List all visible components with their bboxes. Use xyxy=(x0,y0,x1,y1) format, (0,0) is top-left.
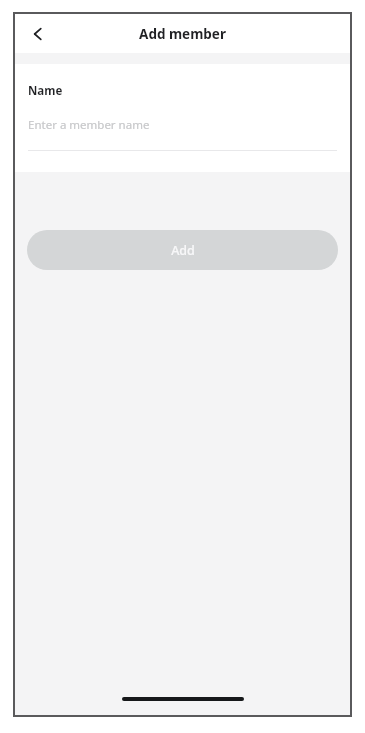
staticText: Add xyxy=(171,242,195,259)
button[interactable]: Add xyxy=(27,230,338,270)
staticText: Enter a member name xyxy=(28,117,150,133)
button[interactable]: Enter a member name xyxy=(15,117,350,151)
button[interactable]: Back xyxy=(21,16,57,52)
staticText: Add member xyxy=(139,25,226,43)
staticText: Name xyxy=(28,83,63,99)
